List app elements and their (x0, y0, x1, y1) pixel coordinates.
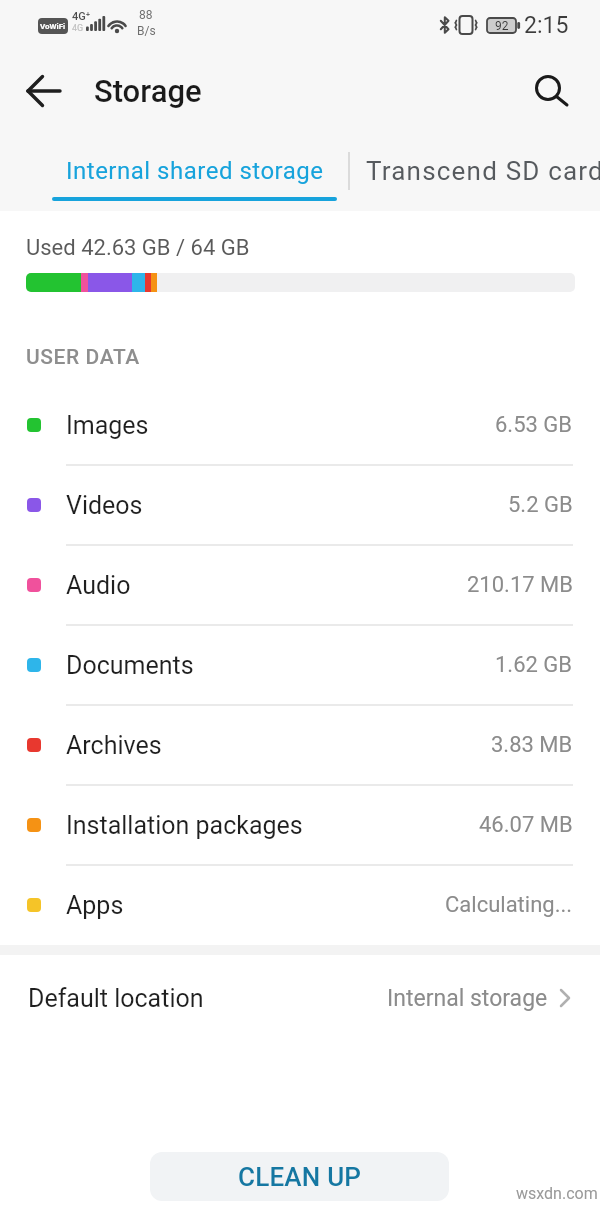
button[interactable]: Videos (0, 465, 600, 545)
button[interactable]: Default location (0, 958, 600, 1038)
staticText: 92 (495, 19, 509, 33)
button[interactable]: Documents (0, 625, 600, 705)
button[interactable]: Apps (0, 865, 600, 945)
staticText: Documents (66, 651, 194, 680)
staticText: 5.2 GB (508, 492, 573, 518)
staticText: Archives (66, 731, 162, 760)
staticText: 3.83 MB (491, 732, 573, 758)
button[interactable] (14, 61, 74, 121)
staticText: 1.62 GB (495, 652, 573, 678)
staticText: B/s (137, 24, 156, 38)
staticText: Installation packages (66, 811, 303, 840)
staticText: Images (66, 411, 149, 440)
button[interactable]: CLEAN UP (150, 1152, 449, 1201)
staticText: CLEAN UP (238, 1162, 362, 1192)
staticText: 6.53 GB (495, 412, 573, 438)
staticText: 210.17 MB (467, 572, 573, 598)
staticText: Transcend SD card (366, 156, 600, 186)
staticText: Videos (66, 491, 143, 520)
staticText: Calculating... (445, 892, 573, 918)
staticText: Internal shared storage (66, 157, 324, 185)
staticText: USER DATA (26, 345, 140, 370)
staticText: Storage (94, 73, 202, 109)
button[interactable] (523, 61, 583, 121)
staticText: 4G (72, 23, 84, 34)
staticText: Default location (28, 984, 204, 1013)
staticText: Apps (66, 891, 124, 920)
staticText: Audio (66, 571, 131, 600)
button[interactable]: Audio (0, 545, 600, 625)
staticText: 4G⁺ (72, 10, 91, 23)
button[interactable]: Archives (0, 705, 600, 785)
staticText: Used 42.63 GB / 64 GB (26, 235, 250, 261)
button[interactable]: Transcend SD card (366, 140, 600, 202)
staticText: 2:15 (524, 12, 569, 39)
staticText: Internal storage (387, 985, 548, 1012)
staticText: VoWiFi (40, 22, 66, 31)
staticText: wsxdn.com (516, 1184, 598, 1203)
staticText: 88 (139, 8, 153, 22)
button[interactable]: Internal shared storage (52, 140, 337, 202)
button[interactable]: Images (0, 385, 600, 465)
staticText: 46.07 MB (479, 812, 573, 838)
button[interactable]: Installation packages (0, 785, 600, 865)
